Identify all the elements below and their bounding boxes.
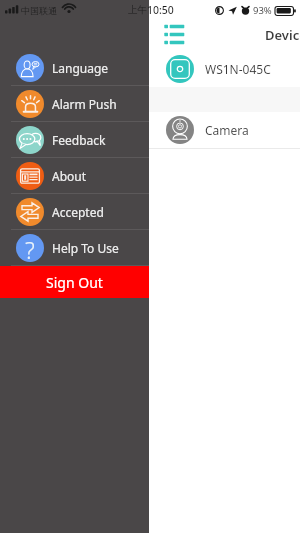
staticText: Help To Use <box>52 240 119 256</box>
button[interactable]: About <box>0 158 149 194</box>
staticText: Feedback <box>52 132 106 148</box>
staticText: Language <box>52 60 109 76</box>
staticText: Device <box>265 26 300 44</box>
staticText: 中国联通 <box>21 5 57 16</box>
staticText: Camera <box>205 122 249 138</box>
button[interactable]: WS1N-045C <box>0 50 300 87</box>
staticText: About <box>52 168 87 184</box>
staticText: 10:50 <box>147 3 174 17</box>
button[interactable]: Sign Out <box>0 266 149 298</box>
button[interactable]: ? <box>0 230 149 266</box>
staticText: Sign Out <box>46 273 103 292</box>
staticText: Alarm Push <box>52 96 117 112</box>
button[interactable]: Menu <box>161 22 187 44</box>
staticText: 93% <box>253 4 272 17</box>
button[interactable]: Language <box>0 50 149 86</box>
button[interactable]: Alarm Push <box>0 86 149 122</box>
staticText: WS1N-045C <box>205 61 271 77</box>
button[interactable]: Camera <box>0 112 300 149</box>
staticText: Accepted <box>52 204 104 220</box>
button[interactable]: Accepted <box>0 194 149 230</box>
staticText: 上午 <box>128 4 147 16</box>
button[interactable]: Feedback <box>0 122 149 158</box>
staticText: ? <box>25 234 35 262</box>
